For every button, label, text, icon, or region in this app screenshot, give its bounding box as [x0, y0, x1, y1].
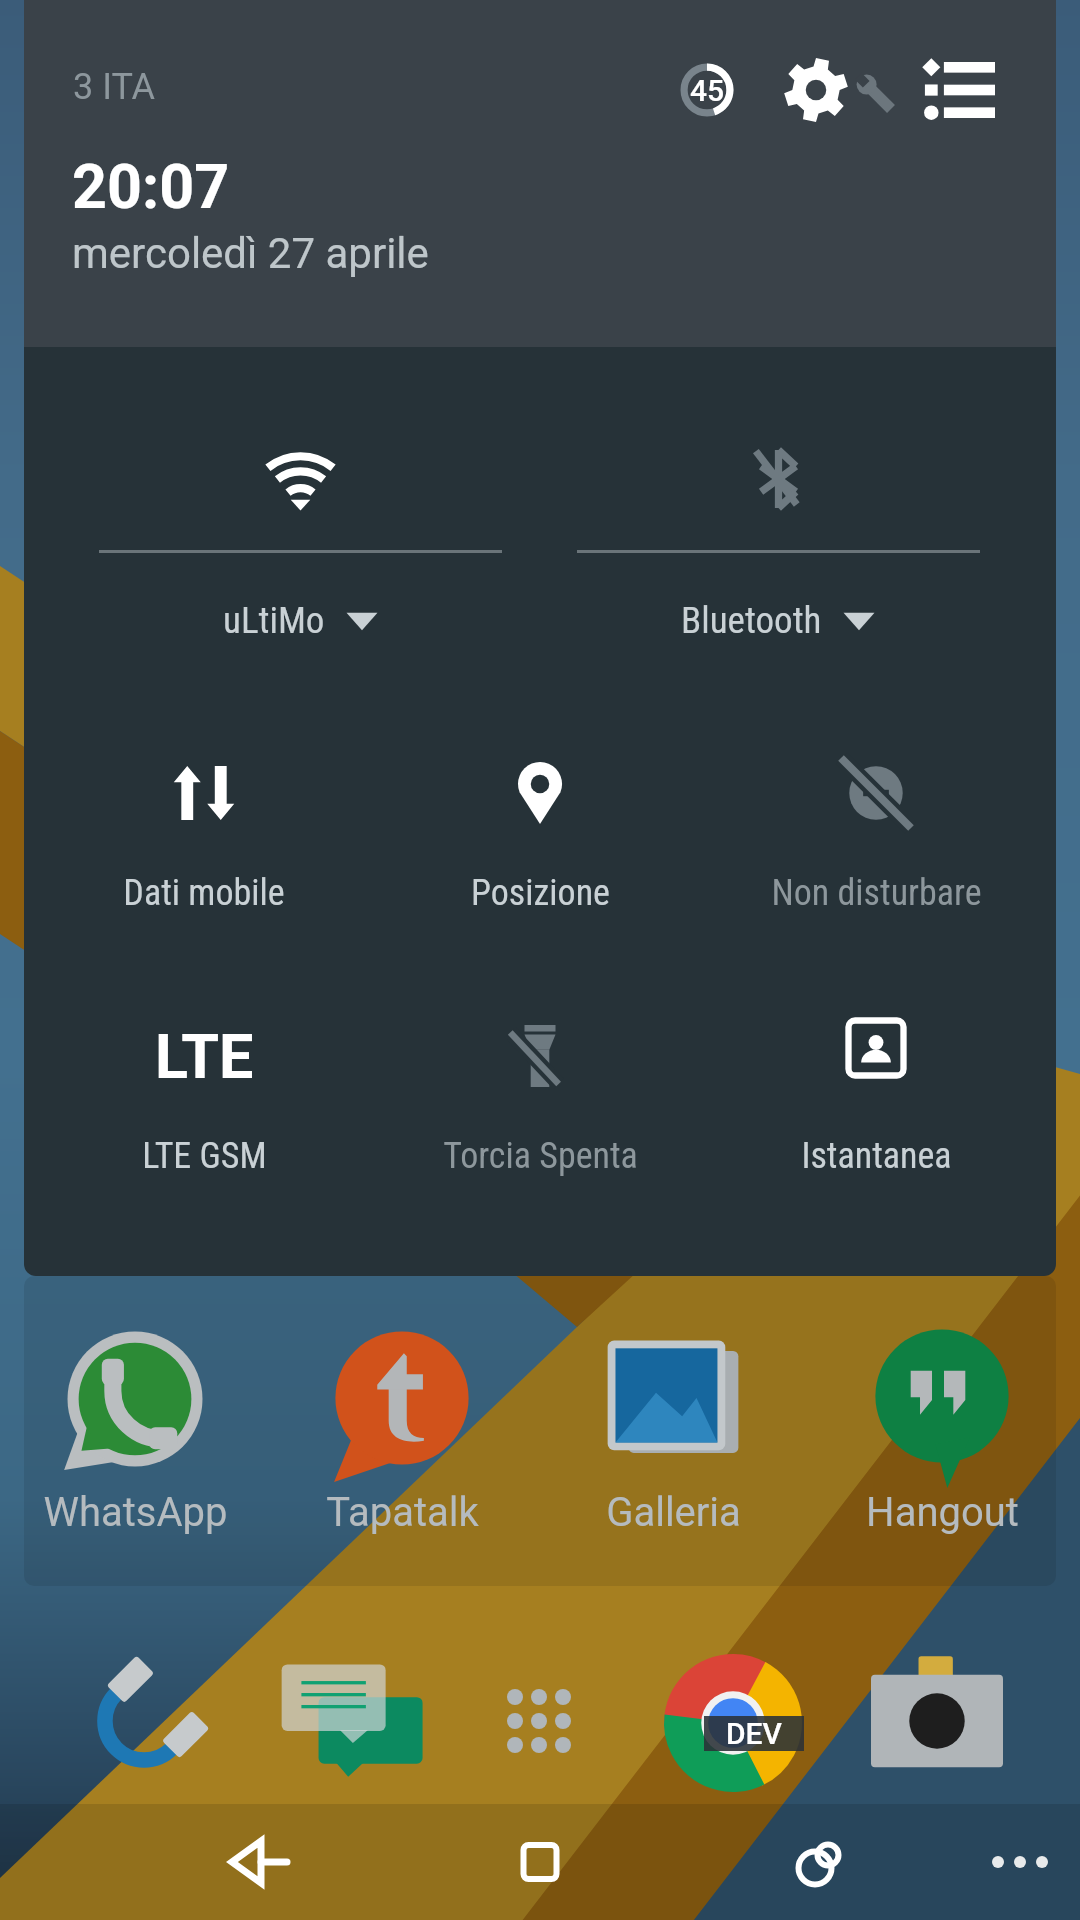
staticText: 45 — [690, 73, 725, 108]
button[interactable]: Hangout — [810, 1310, 1074, 1535]
staticText: DEV — [726, 1716, 782, 1751]
button[interactable]: All apps — [440, 1622, 638, 1820]
staticText: Posizione — [471, 872, 610, 914]
button[interactable]: LTE GSM — [36, 1008, 372, 1177]
staticText: Tapatalk — [326, 1489, 479, 1536]
staticText: Dati mobile — [123, 872, 285, 914]
button[interactable]: Messages — [244, 1622, 442, 1820]
button[interactable]: Non disturbare — [708, 745, 1044, 914]
staticText: Torcia Spenta — [443, 1135, 638, 1177]
button[interactable]: Settings — [772, 42, 900, 138]
button[interactable]: Camera — [838, 1622, 1036, 1820]
button[interactable]: Istantanea — [708, 1008, 1044, 1177]
button[interactable]: Back — [160, 1804, 360, 1920]
button[interactable]: Galleria — [541, 1310, 805, 1535]
button[interactable]: Phone — [45, 1622, 243, 1820]
button[interactable]: Dati mobile — [36, 745, 372, 914]
button[interactable]: WhatsApp — [3, 1310, 267, 1535]
staticText: LTE GSM — [142, 1135, 267, 1177]
staticText: Galleria — [606, 1489, 741, 1536]
staticText: 20:07 — [72, 151, 230, 222]
staticText: mercoledì 27 aprile — [72, 229, 429, 278]
staticText: Bluetooth — [681, 599, 822, 642]
button[interactable]: Tapatalk — [270, 1310, 534, 1535]
button[interactable]: Home — [440, 1804, 640, 1920]
button[interactable]: Wi-Fi uLtiMo — [99, 430, 502, 642]
staticText: 3 ITA — [73, 66, 156, 108]
button[interactable]: More options — [940, 1804, 1080, 1920]
button[interactable]: Chrome — [634, 1622, 832, 1820]
button[interactable]: Battery 45 percent — [647, 42, 767, 138]
staticText: Non disturbare — [771, 872, 982, 914]
button[interactable]: Recent apps — [716, 1804, 916, 1920]
staticText: Hangout — [866, 1489, 1019, 1536]
staticText: Istantanea — [801, 1135, 952, 1177]
button[interactable]: Posizione — [372, 745, 708, 914]
button[interactable]: Bluetooth — [577, 430, 980, 642]
staticText: uLtiMo — [223, 599, 325, 642]
staticText: LTE — [155, 1021, 254, 1092]
staticText: WhatsApp — [43, 1489, 228, 1536]
button[interactable]: Torcia Spenta — [372, 1008, 708, 1177]
button[interactable]: Edit tiles — [904, 42, 1016, 138]
